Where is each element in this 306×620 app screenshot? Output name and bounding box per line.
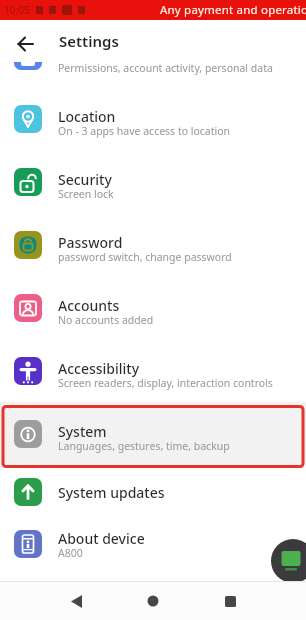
staticText: On - 3 apps have access to location [58, 124, 231, 138]
staticText: A800 [58, 546, 83, 560]
staticText: Screen readers, display, interaction con… [58, 376, 273, 390]
button[interactable]: Password [0, 213, 306, 276]
button[interactable]: About device [0, 518, 306, 570]
staticText: Any payment and operation [160, 2, 306, 18]
staticText: Screen lock [58, 187, 114, 201]
button[interactable] [57, 582, 95, 620]
staticText: Languages, gestures, time, backup [58, 439, 230, 453]
button[interactable] [211, 582, 249, 620]
staticText: No accounts added [58, 313, 154, 327]
button[interactable]: Accessibility [0, 339, 306, 402]
staticText: Permissions, account activity, personal … [58, 61, 273, 75]
button[interactable] [0, 20, 42, 62]
button[interactable] [271, 539, 306, 583]
button[interactable]: Accounts [0, 276, 306, 339]
staticText: Accessibility [58, 359, 140, 378]
staticText: System updates [58, 483, 165, 502]
staticText: Location [58, 107, 116, 126]
button[interactable] [134, 582, 172, 620]
staticText: About device [58, 529, 145, 548]
staticText: System [58, 422, 107, 441]
staticText: Accounts [58, 296, 120, 315]
staticText: Backup [58, 44, 108, 63]
staticText: Password [58, 233, 123, 252]
staticText: password switch, change password [58, 250, 232, 264]
staticText: Settings [59, 31, 119, 51]
staticText: Security [58, 170, 112, 189]
button[interactable]: Backup [0, 24, 306, 87]
button[interactable]: Security [0, 150, 306, 213]
button[interactable]: System [0, 402, 306, 465]
staticText: 10:05 [4, 3, 30, 17]
button[interactable]: System updates [0, 465, 306, 518]
button[interactable]: Location [0, 87, 306, 150]
